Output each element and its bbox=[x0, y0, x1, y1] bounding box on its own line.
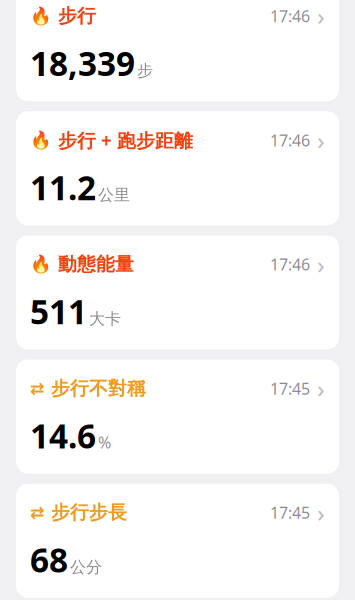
staticText: 🔥 bbox=[30, 6, 52, 26]
staticText: 17:46 bbox=[270, 5, 310, 27]
staticText: % bbox=[98, 432, 111, 453]
staticText: 公里 bbox=[98, 185, 130, 205]
staticText: 11.2 bbox=[30, 165, 96, 209]
staticText: › bbox=[317, 124, 325, 156]
staticText: › bbox=[317, 372, 325, 404]
staticText: 步行 + 跑步距離 bbox=[52, 128, 193, 153]
button[interactable]: 🔥 bbox=[16, 0, 339, 101]
button[interactable]: 🔥 bbox=[16, 111, 339, 225]
staticText: 大卡 bbox=[89, 309, 121, 329]
staticText: 18,339 bbox=[30, 41, 135, 85]
staticText: ⇄ bbox=[30, 379, 45, 398]
staticText: 68 bbox=[30, 537, 68, 582]
staticText: 公分 bbox=[70, 557, 102, 577]
staticText: 511 bbox=[30, 289, 87, 334]
staticText: 🔥 bbox=[30, 130, 52, 150]
staticText: 17:46 bbox=[270, 254, 310, 275]
staticText: › bbox=[317, 248, 325, 280]
staticText: 17:46 bbox=[270, 130, 310, 151]
button[interactable]: ⇄ bbox=[16, 359, 339, 474]
button[interactable]: 🔥 bbox=[16, 235, 339, 349]
staticText: › bbox=[317, 0, 325, 32]
staticText: 動態能量 bbox=[52, 253, 134, 276]
staticText: 17:45 bbox=[270, 378, 310, 399]
staticText: 14.6 bbox=[30, 413, 96, 458]
staticText: 步 bbox=[137, 61, 153, 81]
staticText: 17:45 bbox=[270, 502, 310, 523]
staticText: 步行步長 bbox=[45, 501, 127, 524]
staticText: 步行 bbox=[52, 5, 96, 27]
staticText: 步行不對稱 bbox=[45, 377, 146, 400]
staticText: ⇄ bbox=[30, 503, 45, 522]
staticText: 🔥 bbox=[30, 254, 52, 274]
button[interactable]: ⇄ bbox=[16, 484, 339, 598]
staticText: › bbox=[317, 497, 325, 529]
